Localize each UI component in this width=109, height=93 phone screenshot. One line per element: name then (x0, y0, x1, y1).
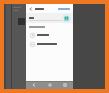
button[interactable]: Recents (60, 81, 70, 89)
button[interactable] (26, 30, 73, 39)
button[interactable]: Scan (62, 14, 71, 23)
button[interactable]: Home (45, 81, 55, 89)
button[interactable] (26, 39, 73, 48)
button[interactable] (57, 6, 71, 12)
button[interactable]: Back (29, 81, 39, 89)
button[interactable]: Back (28, 6, 34, 12)
